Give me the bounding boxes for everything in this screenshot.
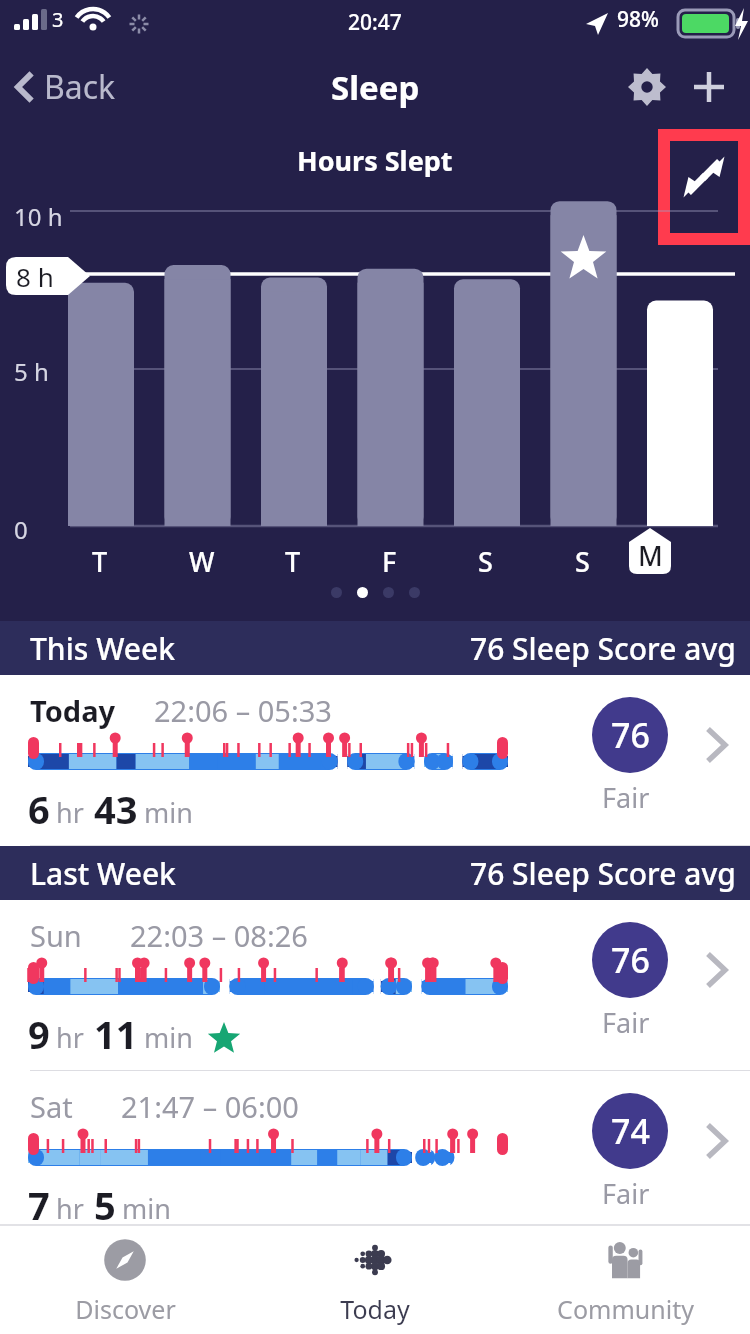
staticText: min xyxy=(144,1019,193,1056)
staticText: 43 xyxy=(94,783,138,835)
staticText: 10 h xyxy=(14,200,63,233)
staticText: Back xyxy=(44,65,116,109)
staticText: min xyxy=(122,1190,171,1227)
staticText: Today xyxy=(340,1292,410,1326)
staticText: Today xyxy=(30,691,116,730)
staticText: S xyxy=(575,543,590,580)
staticText: Hours Slept xyxy=(297,142,453,179)
staticText: Last Week xyxy=(30,853,176,894)
staticText: T xyxy=(285,543,301,580)
staticText: Community xyxy=(557,1292,694,1326)
button[interactable]: Sat xyxy=(0,1071,750,1241)
staticText: 74 xyxy=(611,1108,650,1154)
staticText: 5 h xyxy=(14,355,49,388)
staticText: 76 Sleep Score avg xyxy=(470,853,736,894)
staticText: hr xyxy=(56,1190,84,1227)
staticText: 8 h xyxy=(16,259,54,294)
staticText: S xyxy=(478,543,493,580)
staticText: 21:47 – 06:00 xyxy=(121,1087,299,1126)
staticText: Sun xyxy=(30,916,82,955)
staticText: Discover xyxy=(75,1292,176,1326)
staticText: 6 xyxy=(28,783,50,835)
staticText: T xyxy=(92,543,108,580)
staticText: 11 xyxy=(94,1008,138,1060)
staticText: hr xyxy=(56,1019,84,1056)
staticText: 7 xyxy=(28,1179,50,1231)
button[interactable]: Settings xyxy=(616,56,678,118)
button[interactable]: Today xyxy=(0,675,750,845)
button[interactable]: Back xyxy=(0,57,130,117)
staticText: 0 xyxy=(14,513,28,546)
staticText: Sat xyxy=(30,1087,73,1126)
staticText: F xyxy=(382,543,397,580)
staticText: 22:03 – 08:26 xyxy=(130,916,308,955)
staticText: 76 xyxy=(611,712,650,758)
button[interactable]: Sun xyxy=(0,900,750,1070)
staticText: 9 xyxy=(28,1008,50,1060)
button[interactable]: Fri xyxy=(0,1242,750,1332)
button[interactable]: Add xyxy=(678,56,740,118)
staticText: 76 xyxy=(611,937,650,983)
staticText: 76 Sleep Score avg xyxy=(470,628,736,669)
staticText: 22:26 – 06:36 xyxy=(119,1258,297,1297)
staticText: 5 xyxy=(94,1179,116,1231)
staticText: Fair xyxy=(602,1175,650,1212)
staticText: W xyxy=(189,543,215,580)
staticText: min xyxy=(144,794,193,831)
button[interactable]: Today xyxy=(250,1225,500,1334)
button[interactable]: Expand chart xyxy=(664,135,744,239)
staticText: hr xyxy=(56,794,84,831)
staticText: Fair xyxy=(602,1004,650,1041)
staticText: 3 xyxy=(52,6,64,33)
staticText: 98% xyxy=(617,5,659,34)
button[interactable]: Community xyxy=(500,1225,750,1334)
button[interactable]: Discover xyxy=(0,1225,250,1334)
staticText: This Week xyxy=(30,628,175,669)
staticText: Sleep xyxy=(331,65,420,110)
staticText: 20:47 xyxy=(348,8,402,37)
staticText: Fair xyxy=(602,779,650,816)
staticText: 22:06 – 05:33 xyxy=(154,691,332,730)
staticText: M xyxy=(638,537,663,574)
